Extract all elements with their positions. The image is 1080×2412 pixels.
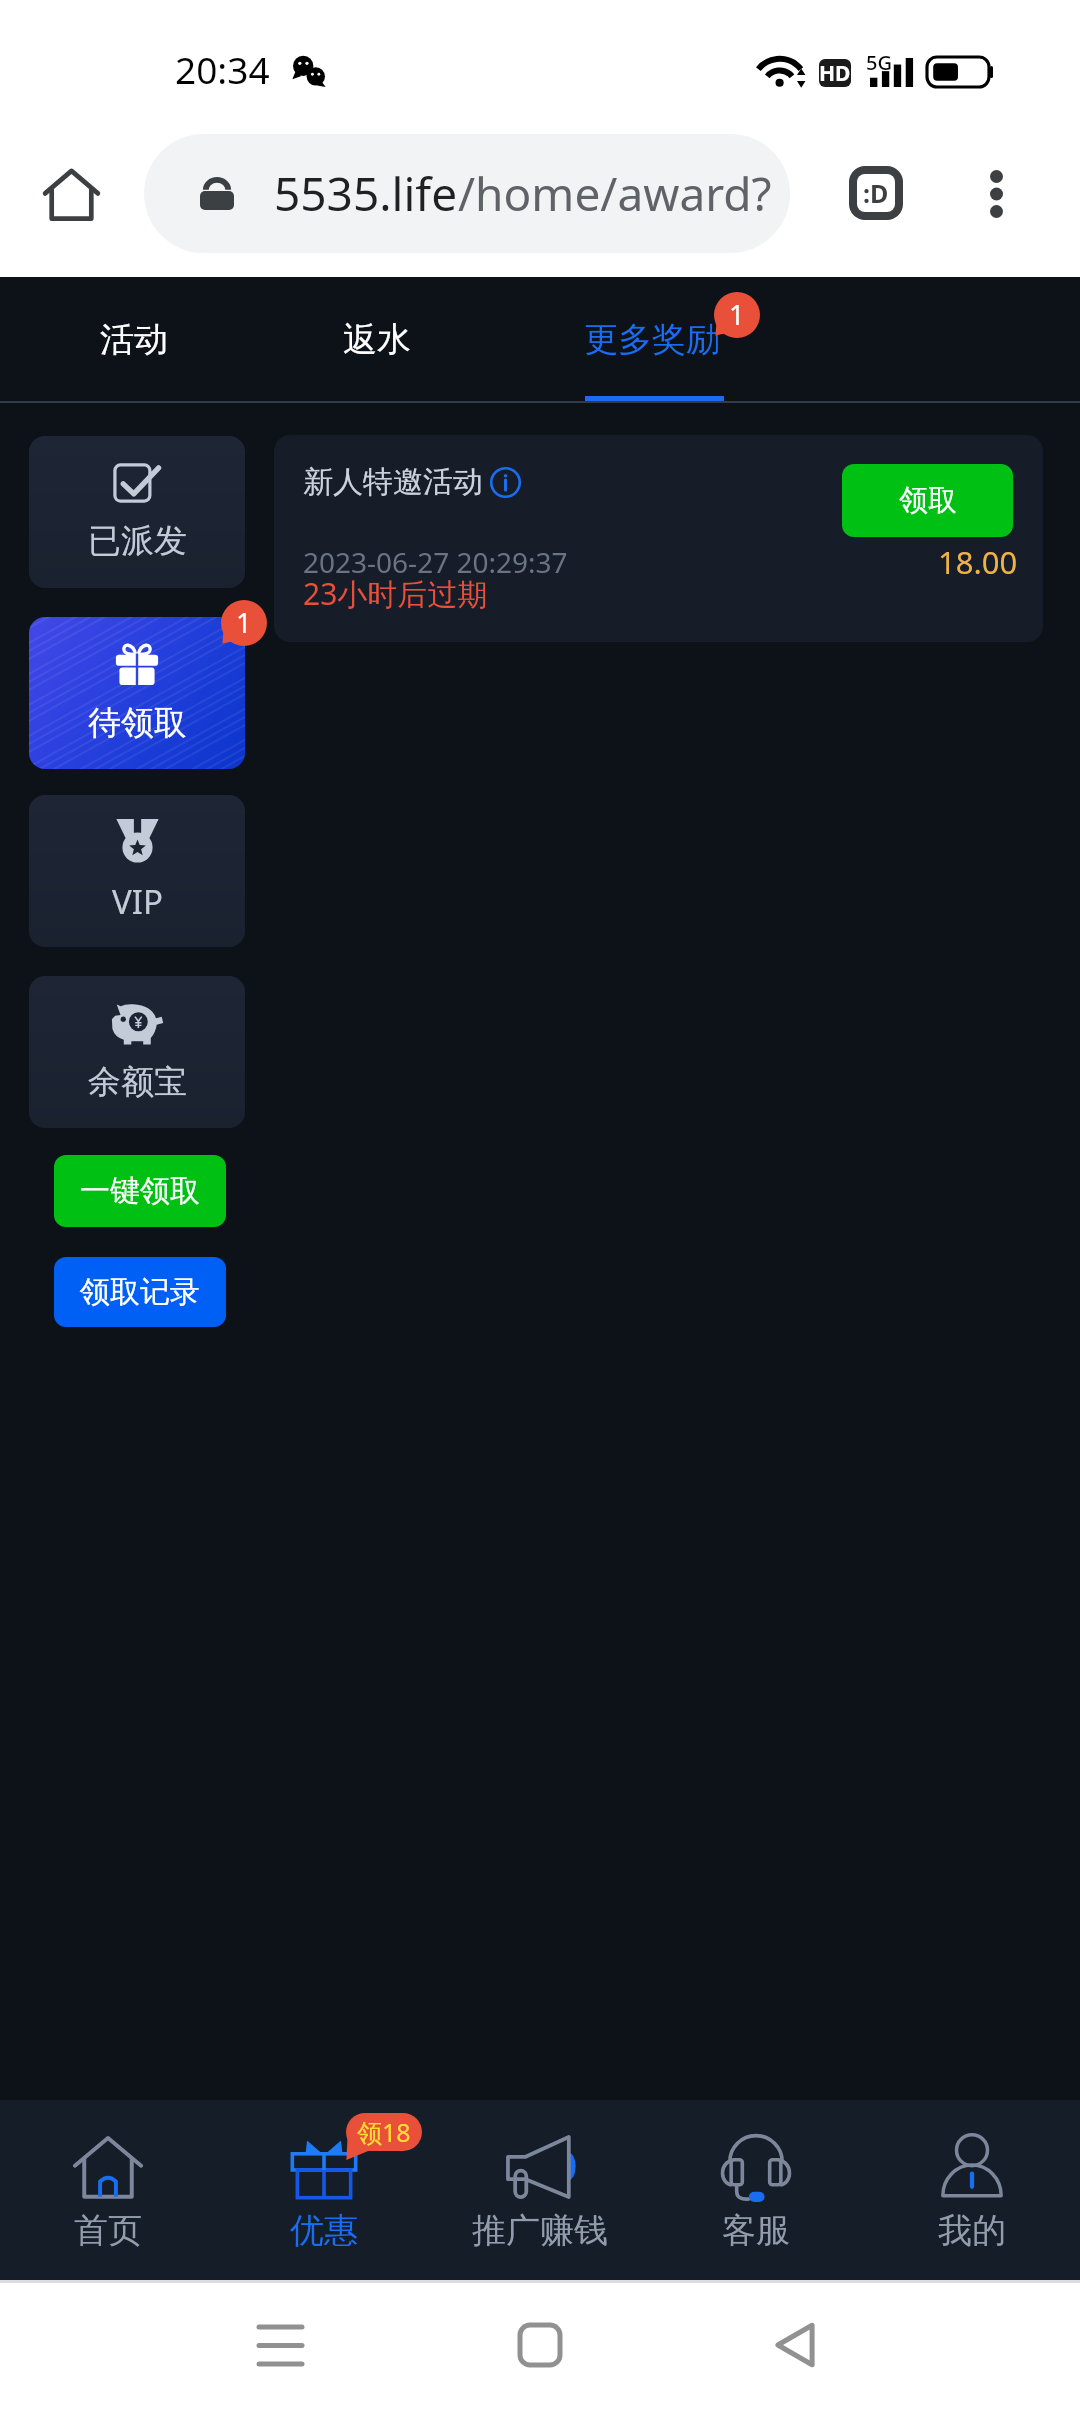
button[interactable]: Home [44, 167, 99, 222]
button[interactable]: 返水 [325, 277, 429, 401]
staticText: 一键领取 [80, 1172, 200, 1210]
button[interactable]: 领取记录 [54, 1257, 226, 1327]
staticText: 首页 [74, 2209, 142, 2252]
button[interactable]: 活动 [82, 277, 186, 401]
button[interactable]: 一键领取 [54, 1155, 226, 1227]
staticText: 新人特邀活动 [303, 463, 483, 501]
staticText: 5G [866, 49, 892, 76]
button[interactable]: 优惠 [216, 2100, 432, 2280]
staticText: /home/award? [458, 162, 772, 225]
button[interactable]: 余额宝 [29, 976, 245, 1128]
staticText: 活动 [100, 318, 168, 361]
staticText: 5535.life [274, 162, 458, 225]
staticText: 23小时后过期 [303, 573, 488, 614]
staticText: HD [819, 59, 851, 87]
staticText: 领取记录 [80, 1273, 200, 1311]
staticText: 2023-06-27 20:29:37 [303, 543, 568, 581]
button[interactable]: VIP [29, 795, 245, 947]
staticText: 领取 [899, 482, 957, 519]
button[interactable]: 已派发 [29, 436, 245, 588]
staticText: 客服 [722, 2209, 790, 2252]
staticText: 待领取 [88, 702, 187, 744]
staticText: 1 [236, 604, 252, 641]
staticText: 20:34 [175, 44, 270, 94]
staticText: 我的 [938, 2209, 1006, 2252]
staticText: 1 [729, 296, 745, 333]
staticText: 优惠 [290, 2209, 358, 2252]
staticText: :D [863, 176, 889, 210]
staticText: VIP [112, 879, 163, 924]
staticText: 已派发 [88, 520, 187, 562]
staticText: 更多奖励 [584, 318, 720, 361]
button[interactable]: More options [969, 160, 1023, 228]
staticText: 返水 [343, 318, 411, 361]
button[interactable]: Tab switcher [849, 166, 903, 220]
button[interactable]: 推广赚钱 [432, 2100, 648, 2280]
button[interactable]: 客服 [648, 2100, 864, 2280]
button[interactable]: 新人特邀活动 [274, 435, 1043, 642]
button[interactable]: 首页 [0, 2100, 216, 2280]
button[interactable]: Home [485, 2290, 595, 2400]
button[interactable]: 待领取 [29, 617, 245, 769]
staticText: 领18 [357, 2115, 411, 2149]
button[interactable]: 5535.life [144, 134, 790, 253]
button[interactable]: 我的 [864, 2100, 1080, 2280]
button[interactable]: Recents [225, 2290, 335, 2400]
staticText: 余额宝 [88, 1061, 187, 1103]
button[interactable]: 更多奖励 [572, 277, 732, 401]
button[interactable]: Back [740, 2290, 850, 2400]
staticText: 推广赚钱 [472, 2209, 608, 2252]
button[interactable]: 领取 [842, 464, 1013, 537]
staticText: 18.00 [938, 541, 1018, 581]
